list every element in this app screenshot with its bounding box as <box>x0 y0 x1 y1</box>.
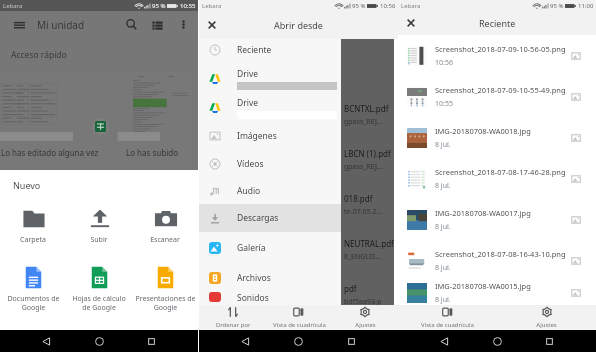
staticText: Lebara <box>3 2 23 10</box>
button[interactable]: Ajustes <box>497 305 596 330</box>
staticText: 8 jul. <box>435 295 451 305</box>
staticText: Vídeos <box>237 158 264 170</box>
staticText: 10:56 <box>380 2 396 10</box>
button[interactable]: Screenshot_2018-07-08-17-46-28.png <box>398 158 596 199</box>
button[interactable]: Back <box>239 335 252 348</box>
staticText: 95 % <box>550 2 564 10</box>
staticText: Screenshot_2018-07-08-16-43-10.png <box>435 249 566 259</box>
button[interactable]: Drive <box>199 93 341 122</box>
staticText: gpass_REJ... <box>344 117 383 127</box>
button[interactable]: Documentos de Google <box>0 265 66 312</box>
button[interactable]: Home <box>292 335 305 348</box>
button[interactable]: IMG-20180708-WA0015.jpg <box>398 281 596 305</box>
staticText: 95 % <box>152 2 166 10</box>
button[interactable]: Recent apps <box>345 335 358 348</box>
button[interactable]: More options <box>176 17 191 32</box>
staticText: IMG-20180708-WA0015.jpg <box>435 281 531 291</box>
staticText: Escanear <box>150 235 180 245</box>
staticText: Subir <box>90 235 108 245</box>
button[interactable]: Imágenes <box>199 122 341 150</box>
staticText: Galería <box>237 242 266 254</box>
button[interactable]: Drive <box>199 64 341 93</box>
button[interactable]: Recent apps <box>543 335 556 348</box>
staticText: 10:55 <box>435 99 453 109</box>
staticText: Lo has subido <box>126 147 178 158</box>
button[interactable]: Switch to list view <box>150 17 165 32</box>
staticText: Sonidos <box>237 292 269 302</box>
staticText: Audio <box>237 185 261 197</box>
button[interactable]: Reciente <box>199 36 341 64</box>
button[interactable]: Escanear <box>132 206 198 245</box>
button[interactable]: IMG-20180708-WA0017.jpg <box>398 199 596 240</box>
staticText: NEUTRAL.pdf <box>344 238 394 249</box>
button[interactable]: Close <box>405 17 417 29</box>
button[interactable]: Search <box>124 17 139 32</box>
staticText: Nuevo <box>13 179 41 191</box>
staticText: Lo has editado alguna vez <box>1 147 99 158</box>
button[interactable]: Lo has subido <box>117 72 190 163</box>
button[interactable]: Presentaciones de Google <box>132 265 198 312</box>
button[interactable]: Back <box>40 335 53 348</box>
staticText: Vista de cuadrícula <box>421 321 474 329</box>
staticText: IMG-20180708-WA0018.jpg <box>435 126 531 136</box>
button[interactable]: Ajustes <box>332 305 398 330</box>
button[interactable]: Close <box>206 19 218 31</box>
staticText: Archivos <box>237 272 271 284</box>
button[interactable]: Back <box>438 335 451 348</box>
staticText: gpass_REJ... <box>344 162 383 172</box>
staticText: Drive <box>237 97 259 109</box>
staticText: Lebara <box>202 2 222 10</box>
button[interactable]: Home <box>491 335 504 348</box>
staticText: Documentos de Google <box>7 294 60 312</box>
button[interactable]: Recent apps <box>145 335 158 348</box>
button[interactable]: Sonidos <box>199 292 341 302</box>
button[interactable]: Hojas de cálculo de Google <box>66 265 132 312</box>
button[interactable]: Vista de cuadrícula <box>398 305 497 330</box>
staticText: Abrir desde <box>274 19 323 31</box>
staticText: 8 jul. <box>435 263 451 273</box>
button[interactable]: Vista de cuadrícula <box>266 305 332 330</box>
staticText: te-07.05.2... <box>344 207 383 217</box>
staticText: Screenshot_2018-07-09-10-55-49.png <box>435 85 566 95</box>
button[interactable]: Vídeos <box>199 150 341 177</box>
staticText: Reciente <box>479 17 516 29</box>
staticText: Reciente <box>237 44 272 56</box>
staticText: 11:00 <box>578 2 594 10</box>
staticText: LBCN (1).pdf <box>344 148 391 159</box>
staticText: Screenshot_2018-07-09-10-56-05.png <box>435 44 566 54</box>
staticText: Ajustes <box>355 321 376 329</box>
button[interactable]: IMG-20180708-WA0018.jpg <box>398 117 596 158</box>
button[interactable]: Screenshot_2018-07-08-16-43-10.png <box>398 240 596 281</box>
staticText: pdf <box>344 283 357 294</box>
staticText: Mi unidad <box>37 18 85 32</box>
staticText: Descargas <box>237 212 279 224</box>
staticText: BCNTXL.pdf <box>344 103 389 114</box>
button[interactable]: Audio <box>199 177 341 204</box>
button[interactable]: Ordenar por <box>199 305 266 330</box>
button[interactable]: Descargas <box>199 204 341 232</box>
staticText: 95 % <box>352 2 366 10</box>
button[interactable]: Navigation menu <box>12 17 27 32</box>
button[interactable]: Archivos <box>199 264 341 292</box>
staticText: 8 jul. <box>435 140 451 150</box>
staticText: Carpeta <box>20 235 46 245</box>
staticText: Ajustes <box>536 321 557 329</box>
staticText: Imágenes <box>237 130 277 142</box>
button[interactable]: Lo has editado alguna vez <box>0 72 113 163</box>
staticText: 8 jul. <box>435 222 451 232</box>
button[interactable]: Screenshot_2018-07-09-10-55-49.png <box>398 76 596 117</box>
staticText: 018.pdf <box>344 193 373 204</box>
staticText: bdf5aa93-p <box>344 297 382 305</box>
staticText: Lebara <box>401 2 421 10</box>
staticText: 8 jul. <box>435 181 451 191</box>
staticText: Screenshot_2018-07-08-17-46-28.png <box>435 167 566 177</box>
button[interactable]: Galería <box>199 232 341 264</box>
button[interactable]: Carpeta <box>0 206 66 245</box>
button[interactable]: Subir <box>66 206 132 245</box>
staticText: Acceso rápido <box>11 49 67 61</box>
staticText: Drive <box>237 68 259 80</box>
staticText: Presentaciones de Google <box>135 294 196 312</box>
button[interactable]: Home <box>93 335 106 348</box>
button[interactable]: Screenshot_2018-07-09-10-56-05.png <box>398 35 596 76</box>
staticText: 10:56 <box>435 58 453 68</box>
